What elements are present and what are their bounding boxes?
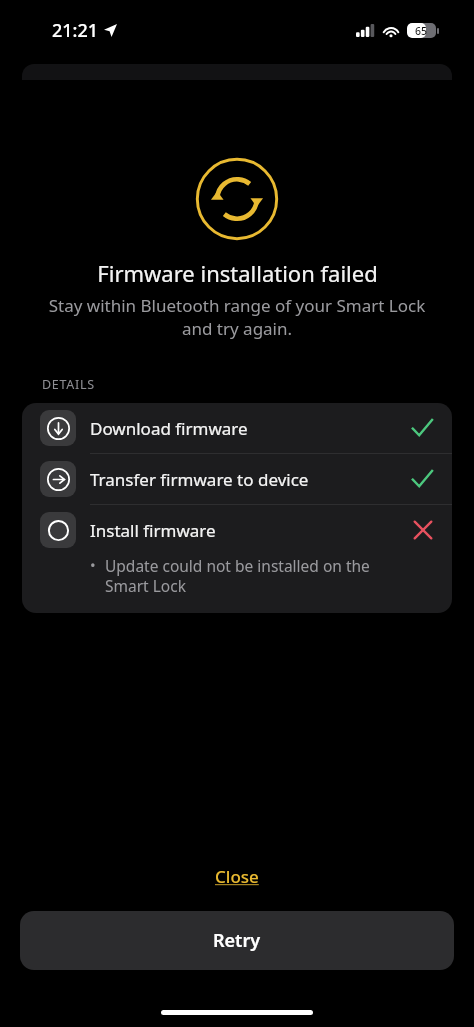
button[interactable]: Retry [20, 911, 454, 970]
staticText: Stay within Bluetooth range of your Smar… [34, 294, 440, 340]
button[interactable]: Install firmware [22, 505, 452, 613]
staticText: • [90, 555, 96, 575]
staticText: Download firmware [90, 417, 248, 440]
button[interactable]: Close [201, 860, 273, 893]
staticText: Install firmware [90, 519, 216, 542]
staticText: Transfer firmware to device [90, 468, 309, 491]
staticText: Retry [213, 928, 261, 953]
other: Failed [410, 517, 436, 543]
staticText: Firmware installation failed [97, 258, 378, 288]
other: Completed [408, 465, 436, 493]
staticText: 21:21 [52, 18, 99, 43]
staticText: Update could not be installed on the Sma… [105, 555, 408, 597]
button[interactable]: Download firmware [22, 403, 452, 453]
staticText: 65 [415, 24, 428, 38]
other: Completed [408, 414, 436, 442]
button[interactable]: Transfer firmware to device [22, 454, 452, 504]
staticText: DETAILS [42, 376, 95, 393]
staticText: Close [215, 865, 259, 888]
